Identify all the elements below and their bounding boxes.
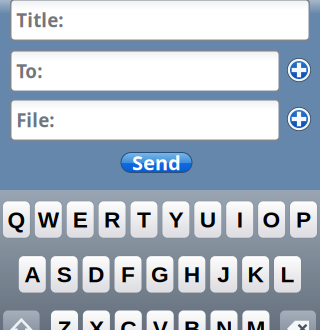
staticText: R <box>104 207 120 232</box>
staticText: Z <box>57 316 71 330</box>
staticText: D <box>88 262 104 287</box>
staticText: P <box>296 207 311 232</box>
staticText: Q <box>7 207 25 232</box>
staticText: U <box>200 207 216 232</box>
button[interactable]: D <box>82 256 110 293</box>
button[interactable]: C <box>114 310 142 330</box>
staticText: C <box>120 316 136 330</box>
button[interactable]: X <box>82 310 110 330</box>
button[interactable]: Send <box>120 152 192 173</box>
button[interactable]: Add <box>287 58 311 82</box>
button[interactable]: F <box>114 256 142 293</box>
button[interactable]: A <box>18 256 46 293</box>
button[interactable]: P <box>289 201 317 238</box>
staticText: File: <box>16 108 54 132</box>
button[interactable]: G <box>146 256 174 293</box>
button[interactable]: Q <box>2 201 30 238</box>
staticText: Y <box>168 207 183 232</box>
button[interactable]: Shift <box>3 310 40 330</box>
button[interactable]: O <box>258 201 286 238</box>
staticText: V <box>153 316 168 330</box>
button[interactable]: U <box>194 201 222 238</box>
staticText: A <box>24 262 40 287</box>
staticText: O <box>263 207 281 232</box>
button[interactable]: K <box>242 256 270 293</box>
staticText: E <box>73 207 88 232</box>
staticText: T <box>137 207 151 232</box>
button[interactable]: Add <box>287 107 311 131</box>
button[interactable]: S <box>50 256 78 293</box>
button[interactable]: E <box>66 201 94 238</box>
staticText: H <box>184 262 200 287</box>
button[interactable]: W <box>34 201 62 238</box>
button[interactable]: Z <box>50 310 78 330</box>
staticText: I <box>237 207 243 232</box>
button[interactable]: B <box>178 310 206 330</box>
staticText: G <box>151 262 169 287</box>
staticText: L <box>280 262 294 287</box>
button[interactable]: V <box>146 310 174 330</box>
button[interactable]: N <box>210 310 238 330</box>
staticText: N <box>216 316 232 330</box>
staticText: M <box>246 316 265 330</box>
staticText: W <box>38 207 59 232</box>
button[interactable]: H <box>178 256 206 293</box>
button[interactable]: I <box>226 201 254 238</box>
staticText: J <box>217 262 230 287</box>
staticText: Send <box>132 149 181 176</box>
button[interactable]: Delete <box>280 310 316 330</box>
staticText: Title: <box>16 8 63 32</box>
staticText: S <box>57 262 72 287</box>
staticText: B <box>184 316 200 330</box>
button[interactable]: Y <box>162 201 190 238</box>
button[interactable]: T <box>130 201 158 238</box>
button[interactable]: R <box>98 201 126 238</box>
button[interactable]: M <box>242 310 270 330</box>
button[interactable]: J <box>210 256 238 293</box>
button[interactable]: L <box>273 256 301 293</box>
staticText: F <box>121 262 135 287</box>
staticText: To: <box>16 59 42 83</box>
staticText: K <box>248 262 264 287</box>
staticText: X <box>89 316 104 330</box>
